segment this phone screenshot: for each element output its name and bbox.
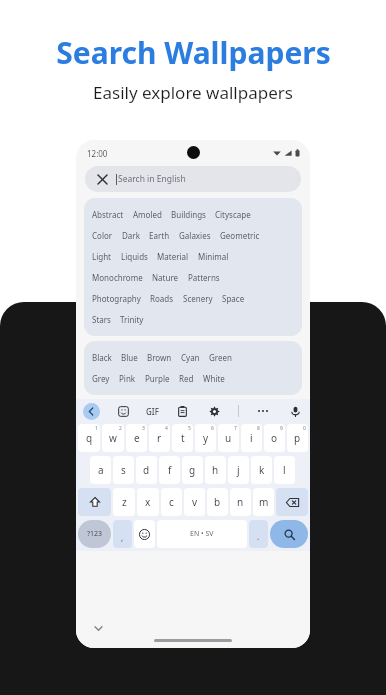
button[interactable]: m (253, 488, 274, 516)
button[interactable]: Abstract (92, 209, 124, 220)
button[interactable]: k (251, 456, 272, 484)
button[interactable]: Brown (147, 352, 172, 363)
staticText: v (192, 495, 198, 509)
button[interactable]: j (228, 456, 249, 484)
staticText: 2 (119, 425, 122, 432)
button[interactable]: q (78, 424, 100, 452)
staticText: 1 (95, 425, 98, 432)
button[interactable]: Liquids (121, 251, 148, 262)
button[interactable]: Hide keyboard (92, 622, 104, 634)
button[interactable]: Dark (122, 230, 140, 241)
staticText: Brown (147, 352, 172, 363)
button[interactable]: Earth (149, 230, 170, 241)
button[interactable]: l (274, 456, 295, 484)
button[interactable]: Galaxies (179, 230, 211, 241)
button[interactable]: Stickers (115, 403, 131, 419)
button[interactable]: y (195, 424, 216, 452)
button[interactable]: r (149, 424, 170, 452)
button[interactable]: Buildings (171, 209, 206, 220)
button[interactable]: u (218, 424, 239, 452)
button[interactable]: z (113, 488, 135, 516)
staticText: m (259, 495, 269, 509)
button[interactable]: f (159, 456, 180, 484)
button[interactable]: More options (255, 403, 271, 419)
button[interactable]: White (203, 373, 225, 384)
staticText: Trinity (120, 314, 144, 325)
staticText: Roads (150, 293, 174, 304)
button[interactable]: Voice input (287, 403, 303, 419)
button[interactable]: Color (92, 230, 113, 241)
button[interactable]: Amoled (133, 209, 162, 220)
button[interactable]: Settings (206, 403, 222, 419)
button[interactable]: c (161, 488, 182, 516)
button[interactable]: GIF (146, 406, 159, 417)
button[interactable]: Minimal (198, 251, 229, 262)
button[interactable]: Blue (121, 352, 138, 363)
button[interactable]: Clear search (85, 166, 301, 192)
button[interactable]: Purple (145, 373, 170, 384)
staticText: 0 (303, 425, 306, 432)
button[interactable]: Black (92, 352, 112, 363)
button[interactable]: g (182, 456, 203, 484)
button[interactable]: Shift (78, 488, 111, 516)
button[interactable]: EN • SV (157, 520, 247, 548)
button[interactable]: Clear search (95, 172, 109, 186)
button[interactable]: n (230, 488, 251, 516)
button[interactable]: a (90, 456, 111, 484)
button[interactable]: Photography (92, 293, 141, 304)
button[interactable]: o (264, 424, 285, 452)
button[interactable]: Back (83, 403, 100, 420)
button[interactable]: v (184, 488, 205, 516)
button[interactable]: Grey (92, 373, 110, 384)
staticText: Nature (152, 272, 179, 283)
staticText: p (294, 431, 301, 445)
button[interactable]: t (172, 424, 193, 452)
staticText: Stars (92, 314, 111, 325)
button[interactable]: Red (179, 373, 194, 384)
button[interactable]: ?123 (78, 520, 111, 548)
staticText: Earth (149, 230, 170, 241)
button[interactable]: Monochrome (92, 272, 143, 283)
button[interactable]: Nature (152, 272, 179, 283)
button[interactable]: Emoji (134, 520, 155, 548)
staticText: w (109, 431, 117, 445)
button[interactable]: b (207, 488, 228, 516)
button[interactable]: Light (92, 251, 112, 262)
button[interactable]: Cyan (181, 352, 200, 363)
button[interactable]: Green (209, 352, 232, 363)
button[interactable]: e (126, 424, 147, 452)
button[interactable]: s (113, 456, 134, 484)
staticText: . (257, 531, 260, 542)
button[interactable]: Search (270, 520, 308, 548)
button[interactable]: d (136, 456, 157, 484)
button[interactable]: Pink (119, 373, 136, 384)
staticText: o (271, 431, 278, 445)
staticText: Light (92, 251, 112, 262)
staticText: Amoled (133, 209, 162, 220)
button[interactable]: Clipboard (174, 403, 190, 419)
staticText: r (157, 431, 162, 445)
staticText: Easily explore wallpapers (93, 81, 293, 104)
button[interactable]: , (113, 520, 132, 548)
button[interactable]: . (249, 520, 268, 548)
button[interactable]: Stars (92, 314, 111, 325)
button[interactable]: Geometric (220, 230, 260, 241)
staticText: f (168, 463, 172, 477)
button[interactable]: Roads (150, 293, 174, 304)
button[interactable]: Space (222, 293, 245, 304)
button[interactable]: Backspace (276, 488, 308, 516)
staticText: Cyan (181, 352, 200, 363)
staticText: Purple (145, 373, 170, 384)
button[interactable]: i (241, 424, 262, 452)
button[interactable]: x (137, 488, 159, 516)
button[interactable]: Trinity (120, 314, 144, 325)
button[interactable]: h (205, 456, 226, 484)
button[interactable]: Cityscape (215, 209, 251, 220)
button[interactable]: p (287, 424, 308, 452)
button[interactable]: Scenery (183, 293, 213, 304)
button[interactable]: w (102, 424, 124, 452)
staticText: Space (222, 293, 245, 304)
button[interactable]: Patterns (188, 272, 220, 283)
staticText: l (283, 463, 286, 477)
button[interactable]: Material (157, 251, 189, 262)
